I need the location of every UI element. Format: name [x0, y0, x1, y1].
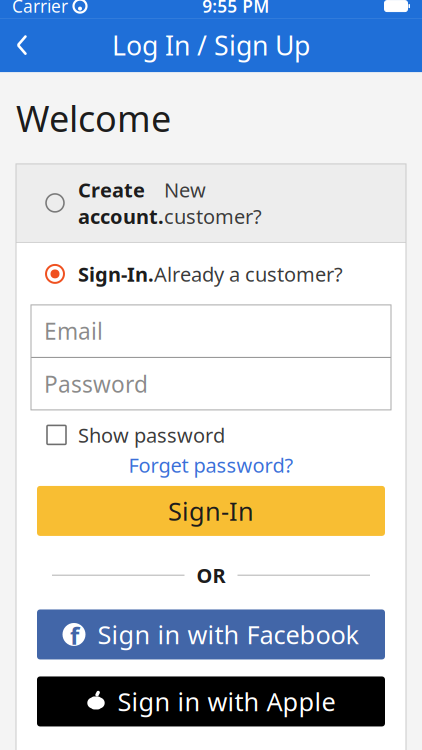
staticText: Sign-In — [168, 494, 254, 528]
staticText: Forget password? — [128, 452, 293, 478]
button[interactable]: Sign-In. — [16, 243, 406, 305]
button[interactable]: Sign in with Apple — [37, 676, 385, 726]
button[interactable]: Show password — [16, 417, 406, 453]
staticText: New customer? — [164, 176, 262, 229]
staticText: Carrier — [12, 0, 68, 18]
staticText: Already a customer? — [154, 261, 343, 287]
button[interactable]: Sign-In — [37, 486, 385, 536]
staticText: OR — [196, 562, 225, 588]
staticText: 9:55 PM — [202, 0, 269, 18]
staticText: Email — [44, 316, 103, 346]
staticText: Create account. — [78, 176, 164, 229]
button[interactable]: Forget password? — [16, 453, 406, 477]
staticText: Password — [44, 369, 148, 399]
staticText: Sign in with Apple — [117, 685, 335, 718]
staticText: Log In / Sign Up — [112, 27, 310, 63]
staticText: Sign in with Facebook — [97, 618, 359, 651]
staticText: Show password — [78, 422, 225, 448]
staticText: Sign-In. — [78, 261, 154, 287]
staticText: Welcome — [16, 94, 171, 142]
button[interactable]: Back — [0, 18, 44, 72]
button[interactable]: Create account. — [16, 164, 406, 242]
staticText: f — [70, 619, 79, 651]
button[interactable]: f — [37, 609, 385, 659]
